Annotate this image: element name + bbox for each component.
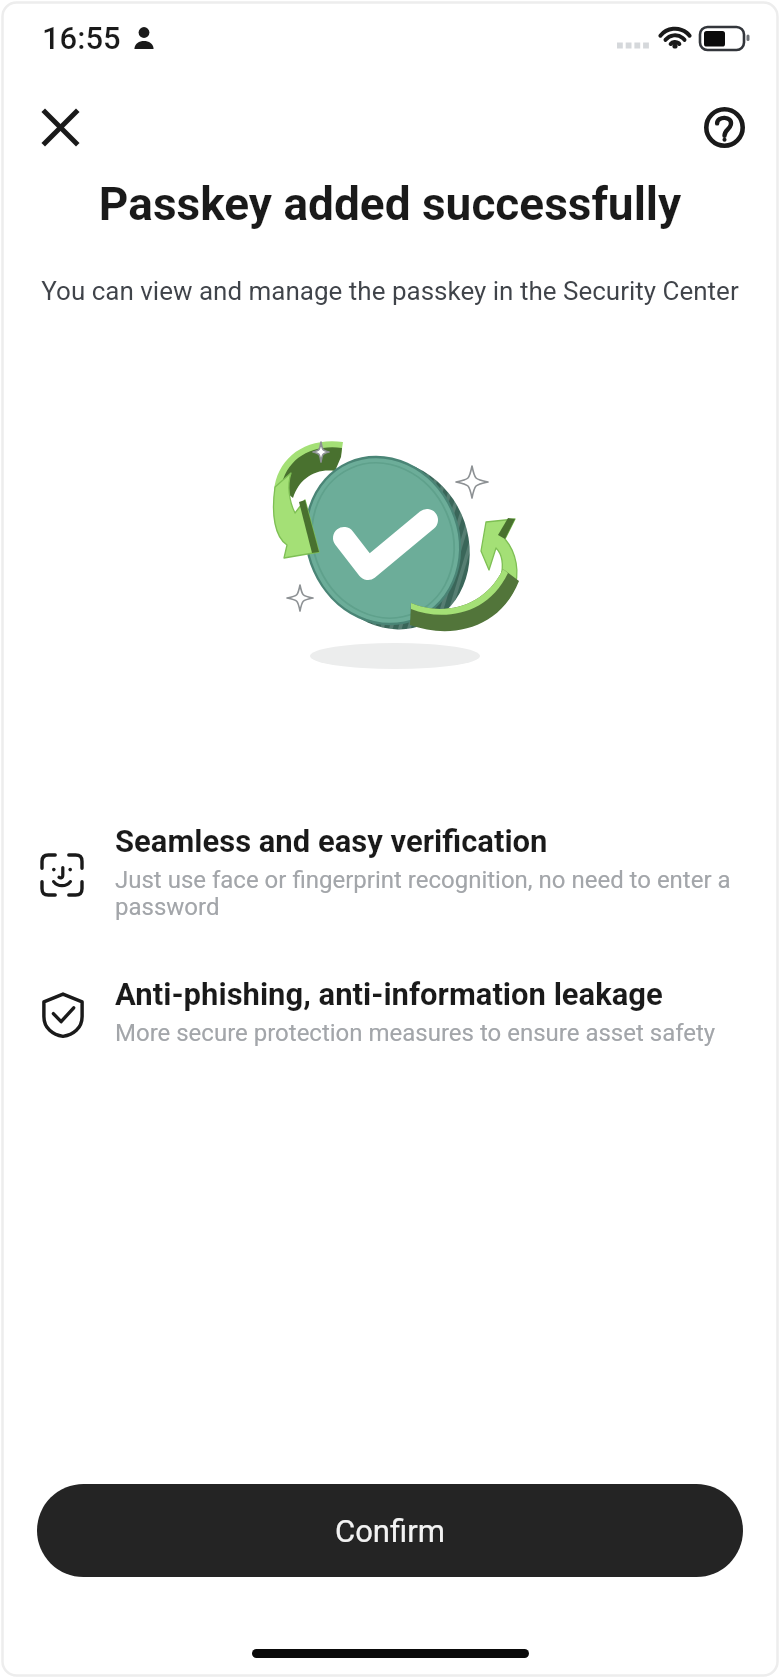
staticText: Confirm [335, 1513, 445, 1549]
staticText: More secure protection measures to ensur… [115, 1019, 716, 1047]
staticText: 16:55 [42, 20, 121, 56]
staticText: Just use face or fingerprint recognition… [115, 866, 744, 921]
button[interactable]: Confirm [37, 1484, 743, 1577]
button[interactable]: Help [690, 93, 758, 161]
staticText: Passkey added successfully [20, 177, 760, 231]
button[interactable]: Close [26, 93, 94, 161]
staticText: You can view and manage the passkey in t… [18, 276, 762, 306]
staticText: Anti-phishing, anti-information leakage [115, 976, 663, 1012]
staticText: Seamless and easy verification [115, 823, 548, 859]
